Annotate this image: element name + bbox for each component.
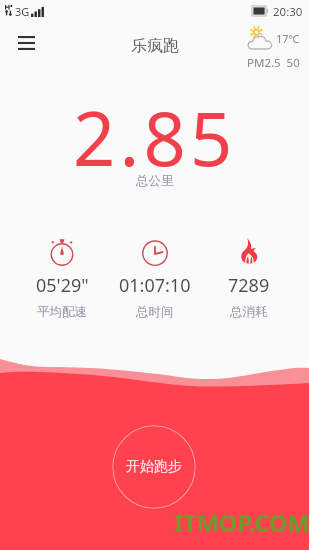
button[interactable]: 开始跑步: [112, 425, 196, 509]
staticText: 3G: [15, 4, 30, 19]
staticText: 20:30: [273, 4, 303, 20]
staticText: 01:07:10: [119, 273, 191, 298]
staticText: 17℃: [276, 31, 300, 46]
staticText: 7289: [228, 273, 270, 298]
staticText: 05'29": [36, 273, 89, 298]
staticText: 总时间: [136, 304, 174, 320]
staticText: 开始跑步: [126, 458, 182, 476]
button[interactable]: 05'29": [23, 236, 101, 320]
staticText: 乐疯跑: [131, 36, 179, 56]
staticText: 2.85: [73, 87, 237, 188]
staticText: ITMOP.COM: [174, 507, 309, 539]
button[interactable]: 7289: [210, 236, 288, 320]
staticText: PM2.5 50: [247, 55, 300, 71]
staticText: 总公里: [136, 173, 174, 189]
staticText: 平均配速: [37, 304, 87, 320]
button[interactable]: 01:07:10: [116, 236, 194, 320]
staticText: 总消耗: [230, 304, 268, 320]
button[interactable]: Menu: [5, 22, 47, 64]
button[interactable]: Weather: [245, 27, 300, 71]
